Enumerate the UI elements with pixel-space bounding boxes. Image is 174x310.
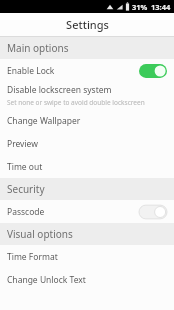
staticText: Preview bbox=[7, 138, 38, 150]
button[interactable]: Preview bbox=[0, 132, 174, 155]
staticText: Main options bbox=[7, 41, 69, 55]
staticText: Disable lockscreen system bbox=[7, 84, 112, 96]
staticText: Enable Lock bbox=[7, 65, 55, 77]
button[interactable]: Toggle on bbox=[139, 63, 167, 79]
staticText: Visual options bbox=[7, 227, 73, 241]
staticText: 13:44 bbox=[151, 2, 171, 12]
staticText: Time out bbox=[7, 161, 43, 173]
staticText: Security bbox=[7, 182, 45, 196]
staticText: Change Unlock Text bbox=[7, 274, 86, 286]
button[interactable]: Passcode bbox=[0, 200, 174, 223]
staticText: Settings bbox=[66, 17, 109, 32]
staticText: Time Format bbox=[7, 251, 58, 263]
button[interactable]: Toggle off bbox=[139, 204, 167, 220]
staticText: Passcode bbox=[7, 206, 45, 218]
button[interactable]: Disable lockscreen system bbox=[0, 82, 174, 109]
staticText: 31% bbox=[132, 2, 148, 12]
button[interactable]: Change Unlock Text bbox=[0, 268, 174, 291]
button[interactable]: Time Format bbox=[0, 245, 174, 268]
button[interactable]: Change Wallpaper bbox=[0, 109, 174, 132]
staticText: Set none or swipe to avoid double locksc… bbox=[7, 98, 145, 107]
staticText: Change Wallpaper bbox=[7, 115, 81, 127]
button[interactable]: Enable Lock bbox=[0, 59, 174, 82]
button[interactable]: Time out bbox=[0, 155, 174, 178]
